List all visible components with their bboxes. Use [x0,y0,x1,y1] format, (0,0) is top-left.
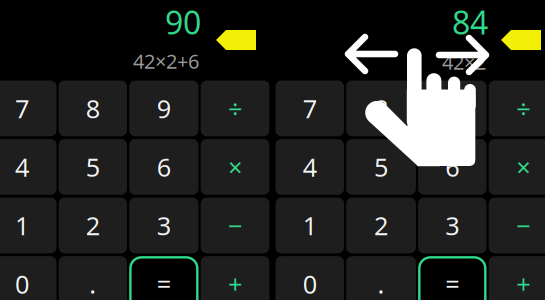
staticText: . [378,267,385,300]
staticText: 0 [303,267,317,300]
staticText: 6 [445,150,459,184]
button[interactable]: 7 [275,80,344,136]
button[interactable]: 5 [59,139,127,195]
button[interactable]: × [489,139,545,195]
staticText: 8 [86,92,100,125]
staticText: − [228,209,242,242]
staticText: 2 [86,209,100,242]
staticText: 42×2 [442,49,486,75]
button[interactable]: 6 [129,139,198,195]
button[interactable]: = [129,256,198,300]
staticText: 3 [445,209,459,242]
button[interactable]: + [489,256,545,300]
button[interactable]: 2 [59,198,127,253]
staticText: 6 [157,150,171,184]
button[interactable]: − [489,198,545,253]
button[interactable]: . [59,256,127,300]
staticText: = [445,267,459,300]
staticText: × [516,150,530,184]
staticText: = [157,267,171,300]
button[interactable]: 5 [346,139,416,195]
button[interactable]: 3 [418,198,486,253]
staticText: 90 [165,1,201,43]
button[interactable]: × [201,139,269,195]
button[interactable]: 8 [346,80,416,136]
button[interactable]: 3 [129,198,198,253]
staticText: 5 [86,150,100,184]
staticText: + [228,267,242,300]
button[interactable]: 4 [275,139,344,195]
staticText: − [516,209,530,242]
button[interactable]: 8 [59,80,127,136]
button[interactable]: 0 [0,256,56,300]
button[interactable]: 9 [129,80,198,136]
button[interactable]: − [201,198,269,253]
staticText: 0 [15,267,29,300]
staticText: ÷ [516,92,530,125]
staticText: 5 [374,150,388,184]
staticText: ÷ [228,92,242,125]
button[interactable]: 1 [0,198,56,253]
button[interactable]: 1 [275,198,344,253]
button[interactable]: 7 [0,80,56,136]
staticText: 42×2+6 [133,48,199,74]
button[interactable]: 0 [275,256,344,300]
button[interactable]: + [201,256,269,300]
button[interactable]: 6 [418,139,486,195]
button[interactable]: ÷ [489,80,545,136]
staticText: 1 [303,209,317,242]
button[interactable]: 2 [346,198,416,253]
staticText: 4 [15,150,29,184]
staticText: 9 [157,92,171,125]
button[interactable]: . [346,256,416,300]
staticText: . [89,267,96,300]
staticText: 7 [15,92,29,125]
staticText: 84 [452,1,488,43]
button[interactable]: 9 [418,80,486,136]
button[interactable]: ÷ [201,80,269,136]
staticText: 3 [157,209,171,242]
staticText: × [228,150,242,184]
staticText: 7 [303,92,317,125]
button[interactable]: 4 [0,139,56,195]
staticText: 8 [374,92,388,125]
staticText: 1 [15,209,29,242]
button[interactable]: = [418,256,486,300]
staticText: 4 [303,150,317,184]
staticText: + [516,267,530,300]
staticText: 2 [374,209,388,242]
